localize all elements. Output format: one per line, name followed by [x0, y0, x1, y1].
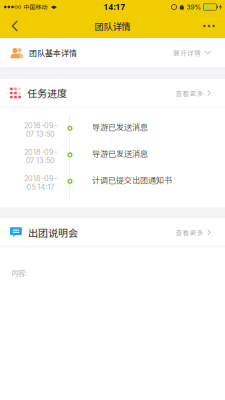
staticText: 任务进度: [27, 86, 67, 100]
button[interactable]: 团队基本详情: [0, 38, 225, 67]
button[interactable]: 出团说明会: [0, 218, 225, 246]
staticText: 团队基本详情: [29, 47, 77, 58]
staticText: 计调已提交出团通知书: [92, 174, 172, 186]
staticText: 07 13:50: [26, 156, 55, 165]
staticText: 2018-09-: [24, 121, 57, 130]
staticText: 导游已发送消息: [92, 121, 148, 133]
button[interactable]: 更多: [193, 14, 225, 38]
staticText: 导游已发送消息: [92, 147, 148, 159]
staticText: 07 13:50: [26, 130, 55, 138]
staticText: 内容:: [11, 267, 27, 278]
button[interactable]: 返回: [0, 14, 30, 38]
staticText: 出团说明会: [28, 225, 78, 240]
staticText: 中国移动: [23, 3, 47, 11]
staticText: 团队详情: [94, 19, 130, 33]
staticText: 展开详情: [173, 48, 201, 57]
staticText: 05 14:17: [26, 183, 54, 191]
staticText: 查看更多: [175, 227, 203, 237]
button[interactable]: 任务进度: [0, 79, 225, 107]
staticText: 查看更多: [175, 88, 203, 98]
staticText: 14:17: [103, 2, 125, 12]
staticText: 39%: [186, 3, 201, 11]
staticText: 2018-09-: [24, 174, 57, 183]
staticText: 2018-09-: [24, 148, 57, 157]
